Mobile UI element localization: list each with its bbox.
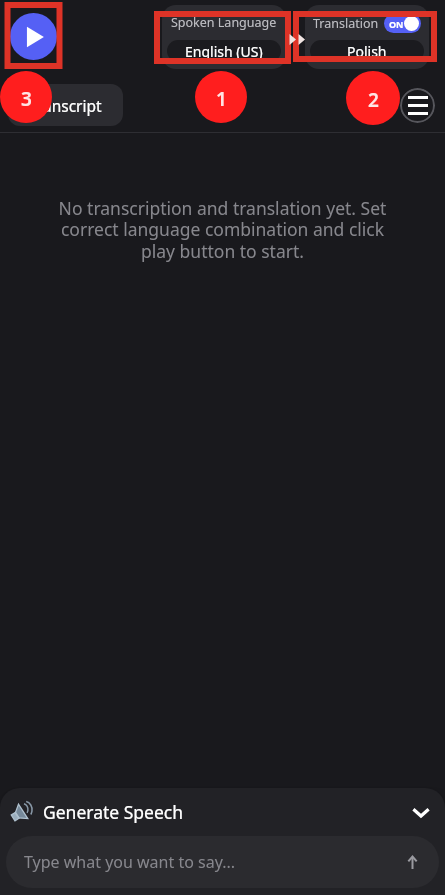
button[interactable]: Menu bbox=[400, 88, 435, 123]
staticText: No transcription and translation yet. Se… bbox=[52, 196, 393, 263]
staticText: 2 bbox=[368, 87, 379, 113]
button[interactable]: Translation toggle bbox=[384, 14, 421, 33]
staticText: Polish bbox=[347, 42, 387, 61]
button[interactable]: Polish bbox=[310, 40, 424, 62]
staticText: English (US) bbox=[185, 42, 263, 61]
other: Expand bbox=[411, 802, 431, 822]
staticText: Translation bbox=[313, 15, 379, 32]
button[interactable]: Type what you want to say... bbox=[6, 836, 439, 888]
staticText: Generate Speech bbox=[43, 800, 184, 824]
staticText: Spoken Language bbox=[171, 14, 277, 31]
button[interactable]: Swap languages bbox=[287, 28, 307, 48]
button[interactable]: English (US) bbox=[167, 40, 281, 62]
staticText: Type what you want to say... bbox=[24, 851, 236, 873]
staticText: Transcript bbox=[29, 95, 102, 116]
button[interactable]: Play bbox=[10, 13, 57, 60]
staticText: 1 bbox=[216, 86, 227, 112]
button[interactable]: Generate Speech bbox=[0, 788, 445, 836]
staticText: 3 bbox=[21, 86, 32, 112]
staticText: ON bbox=[389, 18, 404, 30]
button[interactable]: Transcript bbox=[8, 84, 123, 126]
